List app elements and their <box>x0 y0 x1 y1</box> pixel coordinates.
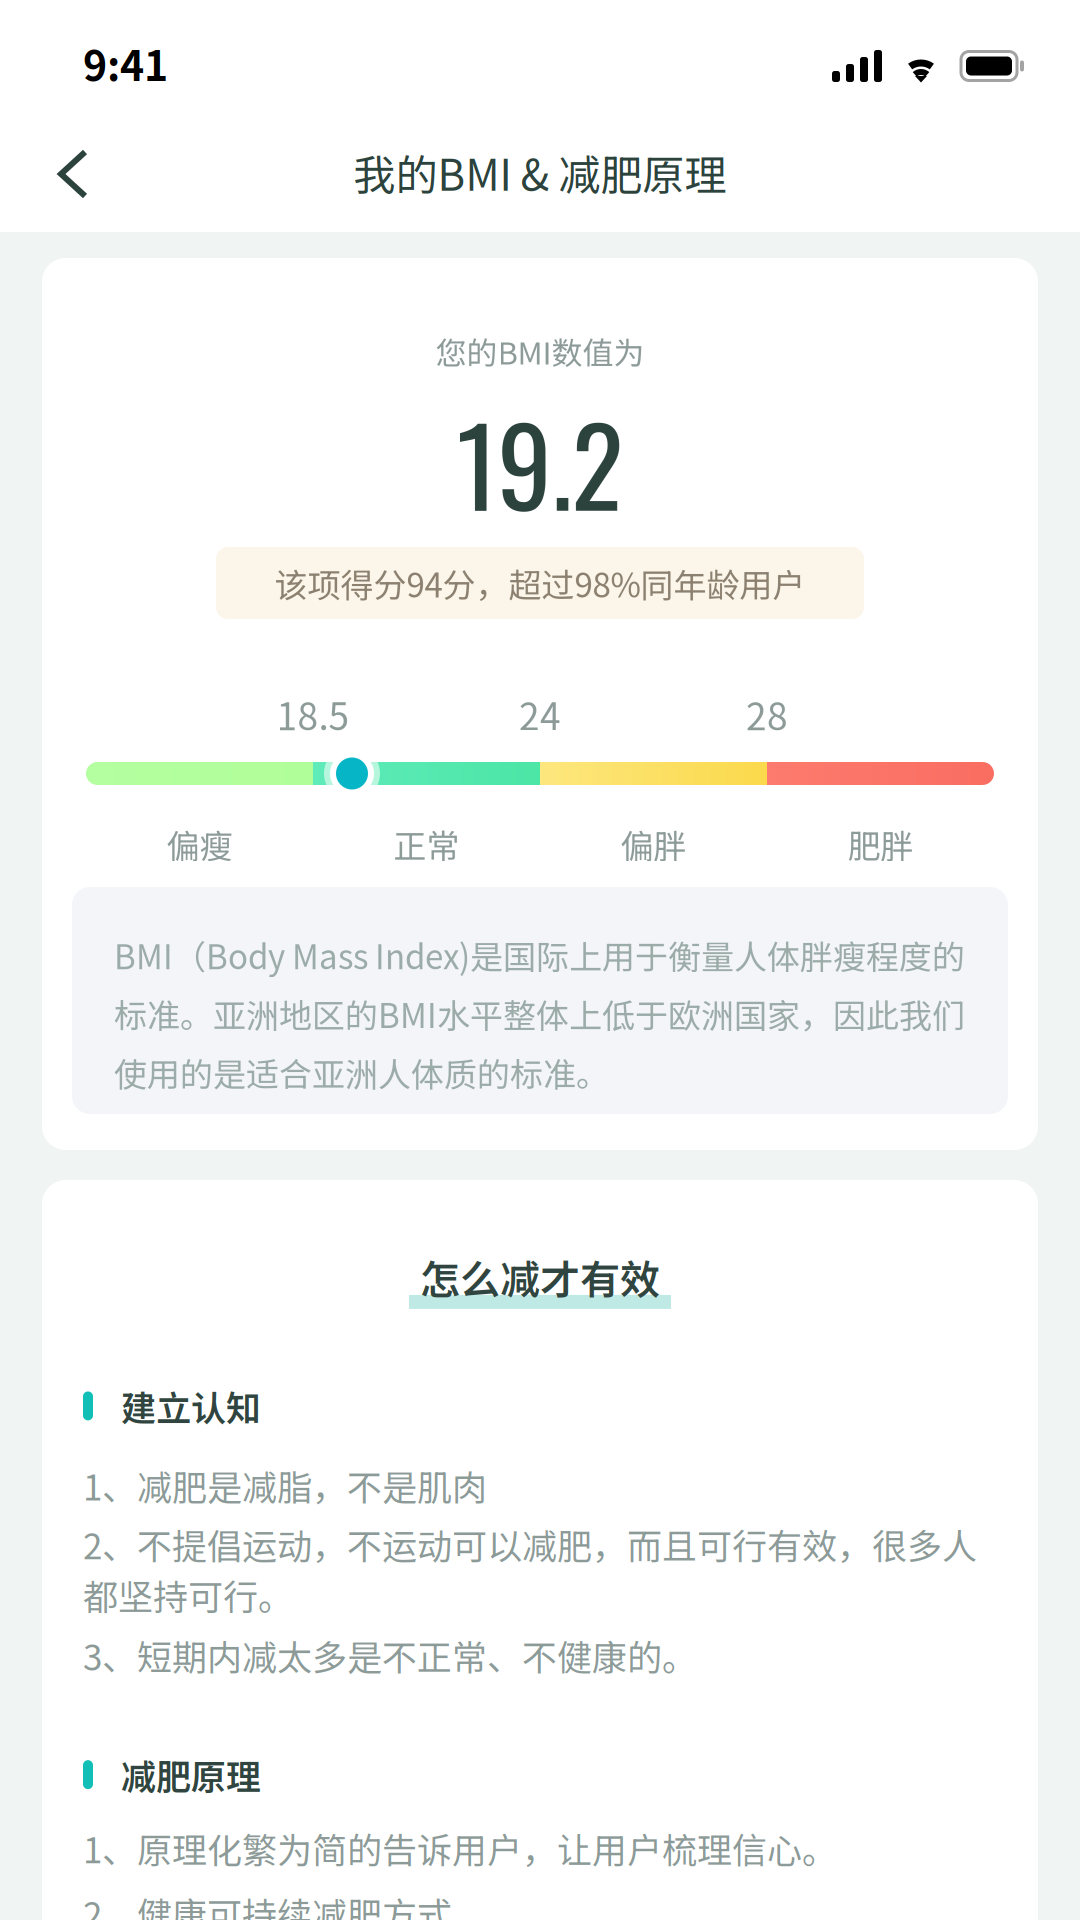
staticText: 建立认知 <box>121 1381 261 1431</box>
staticText: 您的BMI数值为 <box>435 329 644 373</box>
staticText: 2、不提倡运动，不运动可以减肥，而且可行有效，很多人都坚持可行。 <box>83 1519 977 1620</box>
button[interactable]: 返回 <box>0 132 130 232</box>
staticText: 1、减肥是减脂，不是肌肉 <box>83 1460 487 1511</box>
staticText: 我的BMI & 减肥原理 <box>353 142 726 203</box>
staticText: 肥胖 <box>847 820 913 868</box>
staticText: 19.2 <box>456 382 623 542</box>
staticText: 偏瘦 <box>166 820 232 868</box>
staticText: 偏胖 <box>620 820 686 868</box>
staticText: 怎么减才有效 <box>420 1248 660 1306</box>
staticText: BMI（Body Mass Index)是国际上用于衡量人体胖瘦程度的标准。亚洲… <box>114 931 965 1096</box>
staticText: 9:41 <box>83 33 168 93</box>
staticText: 2、健康可持续减肥方式 <box>83 1887 452 1920</box>
staticText: 该项得分94分，超过98%同年龄用户 <box>274 559 805 607</box>
staticText: 正常 <box>393 820 459 868</box>
staticText: 18.5 <box>276 687 349 741</box>
staticText: 1、原理化繁为简的告诉用户，让用户梳理信心。 <box>83 1823 837 1873</box>
staticText: 24 <box>519 687 561 741</box>
staticText: 28 <box>746 687 788 741</box>
staticText: 减肥原理 <box>121 1749 261 1800</box>
staticText: 3、短期内减太多是不正常、不健康的。 <box>83 1630 697 1681</box>
